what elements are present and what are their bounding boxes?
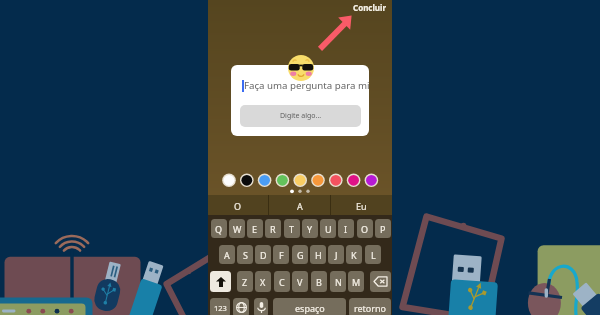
staticText: C <box>279 276 285 288</box>
button[interactable]: Faça uma pergunta para mim <box>231 65 369 136</box>
staticText: O <box>361 223 369 235</box>
staticText: 123 <box>214 303 227 313</box>
button[interactable]: C <box>274 271 290 292</box>
button[interactable]: retorno <box>349 298 391 315</box>
button[interactable]: O <box>357 219 373 238</box>
staticText: R <box>270 223 276 235</box>
button[interactable]: I <box>338 219 354 238</box>
staticText: Y <box>307 223 313 235</box>
staticText: X <box>260 276 266 288</box>
staticText: J <box>335 249 338 261</box>
staticText: espaço <box>295 302 325 314</box>
staticText: L <box>371 249 376 261</box>
staticText: S <box>243 249 248 261</box>
staticText: I <box>344 223 348 235</box>
button[interactable]: J <box>328 245 344 264</box>
staticText: T <box>289 223 295 235</box>
button[interactable]: A <box>269 195 330 216</box>
button[interactable]: V <box>292 271 308 292</box>
button[interactable]: Digite algo... <box>240 105 361 127</box>
button[interactable]: Switch keyboard <box>233 298 249 315</box>
staticText: A <box>297 200 303 212</box>
button[interactable]: Z <box>237 271 253 292</box>
staticText: G <box>297 249 304 261</box>
button[interactable]: T <box>284 219 300 238</box>
staticText: K <box>351 249 357 261</box>
button[interactable]: Backspace <box>370 271 391 292</box>
button[interactable]: Eu <box>331 195 392 216</box>
staticText: B <box>316 276 322 288</box>
staticText: Eu <box>356 200 367 212</box>
staticText: E <box>252 223 258 235</box>
button[interactable]: Voice input <box>254 298 268 315</box>
button[interactable]: D <box>255 245 271 264</box>
button[interactable]: Concluir <box>349 0 393 17</box>
button[interactable]: G <box>292 245 308 264</box>
staticText: P <box>380 223 386 235</box>
staticText: W <box>233 223 242 235</box>
staticText: H <box>315 249 322 261</box>
staticText: O <box>234 200 242 212</box>
staticText: Q <box>215 223 223 235</box>
button[interactable]: S <box>237 245 253 264</box>
button[interactable]: U <box>320 219 336 238</box>
staticText: N <box>335 276 342 288</box>
staticText: Z <box>242 276 248 288</box>
button[interactable]: K <box>346 245 362 264</box>
button[interactable]: A <box>219 245 235 264</box>
staticText: Digite algo... <box>280 111 322 121</box>
button[interactable]: Shift <box>210 271 231 292</box>
button[interactable]: O <box>208 195 268 216</box>
button[interactable]: L <box>365 245 381 264</box>
staticText: F <box>279 249 284 261</box>
button[interactable]: M <box>348 271 364 292</box>
button[interactable]: X <box>255 271 271 292</box>
button[interactable]: F <box>273 245 289 264</box>
button[interactable]: Y <box>302 219 318 238</box>
staticText: retorno <box>354 302 387 314</box>
button[interactable]: W <box>229 219 245 238</box>
staticText: Faça uma pergunta para mim <box>244 79 369 92</box>
staticText: V <box>297 276 303 288</box>
button[interactable]: E <box>247 219 263 238</box>
button[interactable]: R <box>265 219 281 238</box>
button[interactable]: N <box>330 271 346 292</box>
button[interactable]: P <box>375 219 391 238</box>
button[interactable]: Q <box>211 219 227 238</box>
button[interactable]: H <box>310 245 326 264</box>
staticText: U <box>325 223 332 235</box>
staticText: M <box>352 276 361 288</box>
staticText: Concluir <box>353 2 387 13</box>
button[interactable]: 123 <box>210 298 230 315</box>
button[interactable]: espaço <box>273 298 346 315</box>
button[interactable]: B <box>311 271 327 292</box>
staticText: A <box>224 249 230 261</box>
staticText: D <box>260 249 267 261</box>
